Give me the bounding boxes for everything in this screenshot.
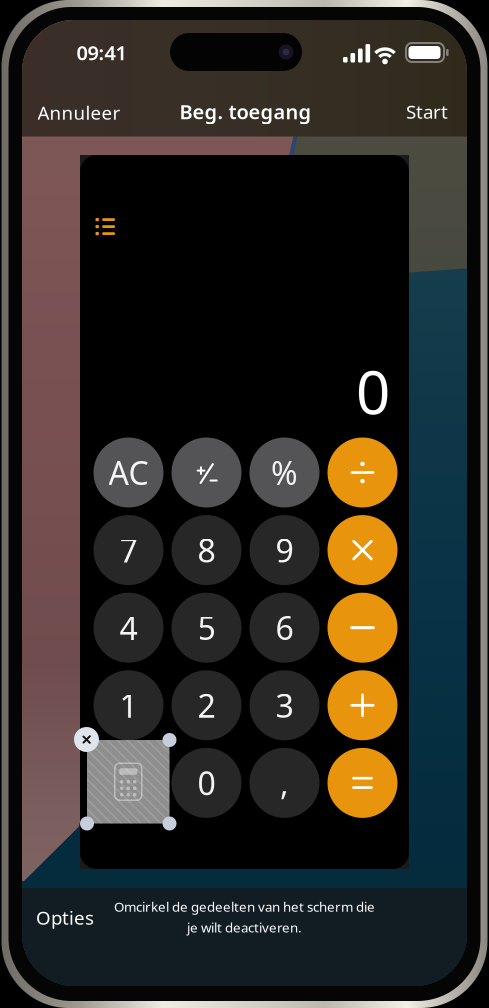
staticText: 2 [197,684,215,727]
staticText: 09:41 [76,39,126,66]
staticText: 0 [356,351,390,431]
button[interactable] [93,748,163,818]
staticText: Start [406,99,448,124]
staticText: % [271,451,298,494]
staticText: AC [108,451,148,494]
staticText: Opties [36,905,94,930]
button[interactable]: Add [327,670,397,740]
button[interactable]: 6 [249,593,319,663]
staticText: 0 [197,762,215,804]
button[interactable]: 5 [171,593,241,663]
staticText: Omcirkel de gedeelten van het scherm die [114,898,375,915]
staticText: 5 [197,606,215,649]
button[interactable]: % [249,437,319,507]
staticText: 1 [119,684,137,727]
staticText: 9 [275,529,293,571]
staticText: je wilt deactiveren. [187,918,302,936]
staticText: 4 [119,606,137,649]
button[interactable]: 7 [93,515,163,585]
button[interactable]: 3 [249,670,319,740]
staticText: Annuleer [37,100,120,125]
button[interactable]: 4 [93,593,163,663]
staticText: , [280,762,289,804]
button[interactable]: , [249,748,319,818]
button[interactable]: History [95,218,115,236]
button[interactable]: Annuleer [27,90,130,135]
button[interactable]: Start [396,89,458,134]
staticText: 8 [197,529,215,571]
button[interactable]: 1 [93,670,163,740]
button[interactable]: 0 [171,748,241,818]
staticText: 7 [119,529,137,571]
button[interactable]: Divide [327,437,397,507]
button[interactable]: 8 [171,515,241,585]
button[interactable]: Remove region [74,727,99,752]
button[interactable]: Equals [327,748,397,818]
button[interactable]: Multiply [327,515,397,585]
button[interactable]: Opties [26,895,104,940]
button[interactable]: 9 [249,515,319,585]
staticText: 3 [275,684,293,727]
button[interactable]: Subtract [327,593,397,663]
button[interactable]: AC [93,437,163,507]
staticText: Beg. toegang [179,98,311,125]
button[interactable]: Plus minus [171,437,241,507]
staticText: 6 [275,606,293,649]
button[interactable]: 2 [171,670,241,740]
